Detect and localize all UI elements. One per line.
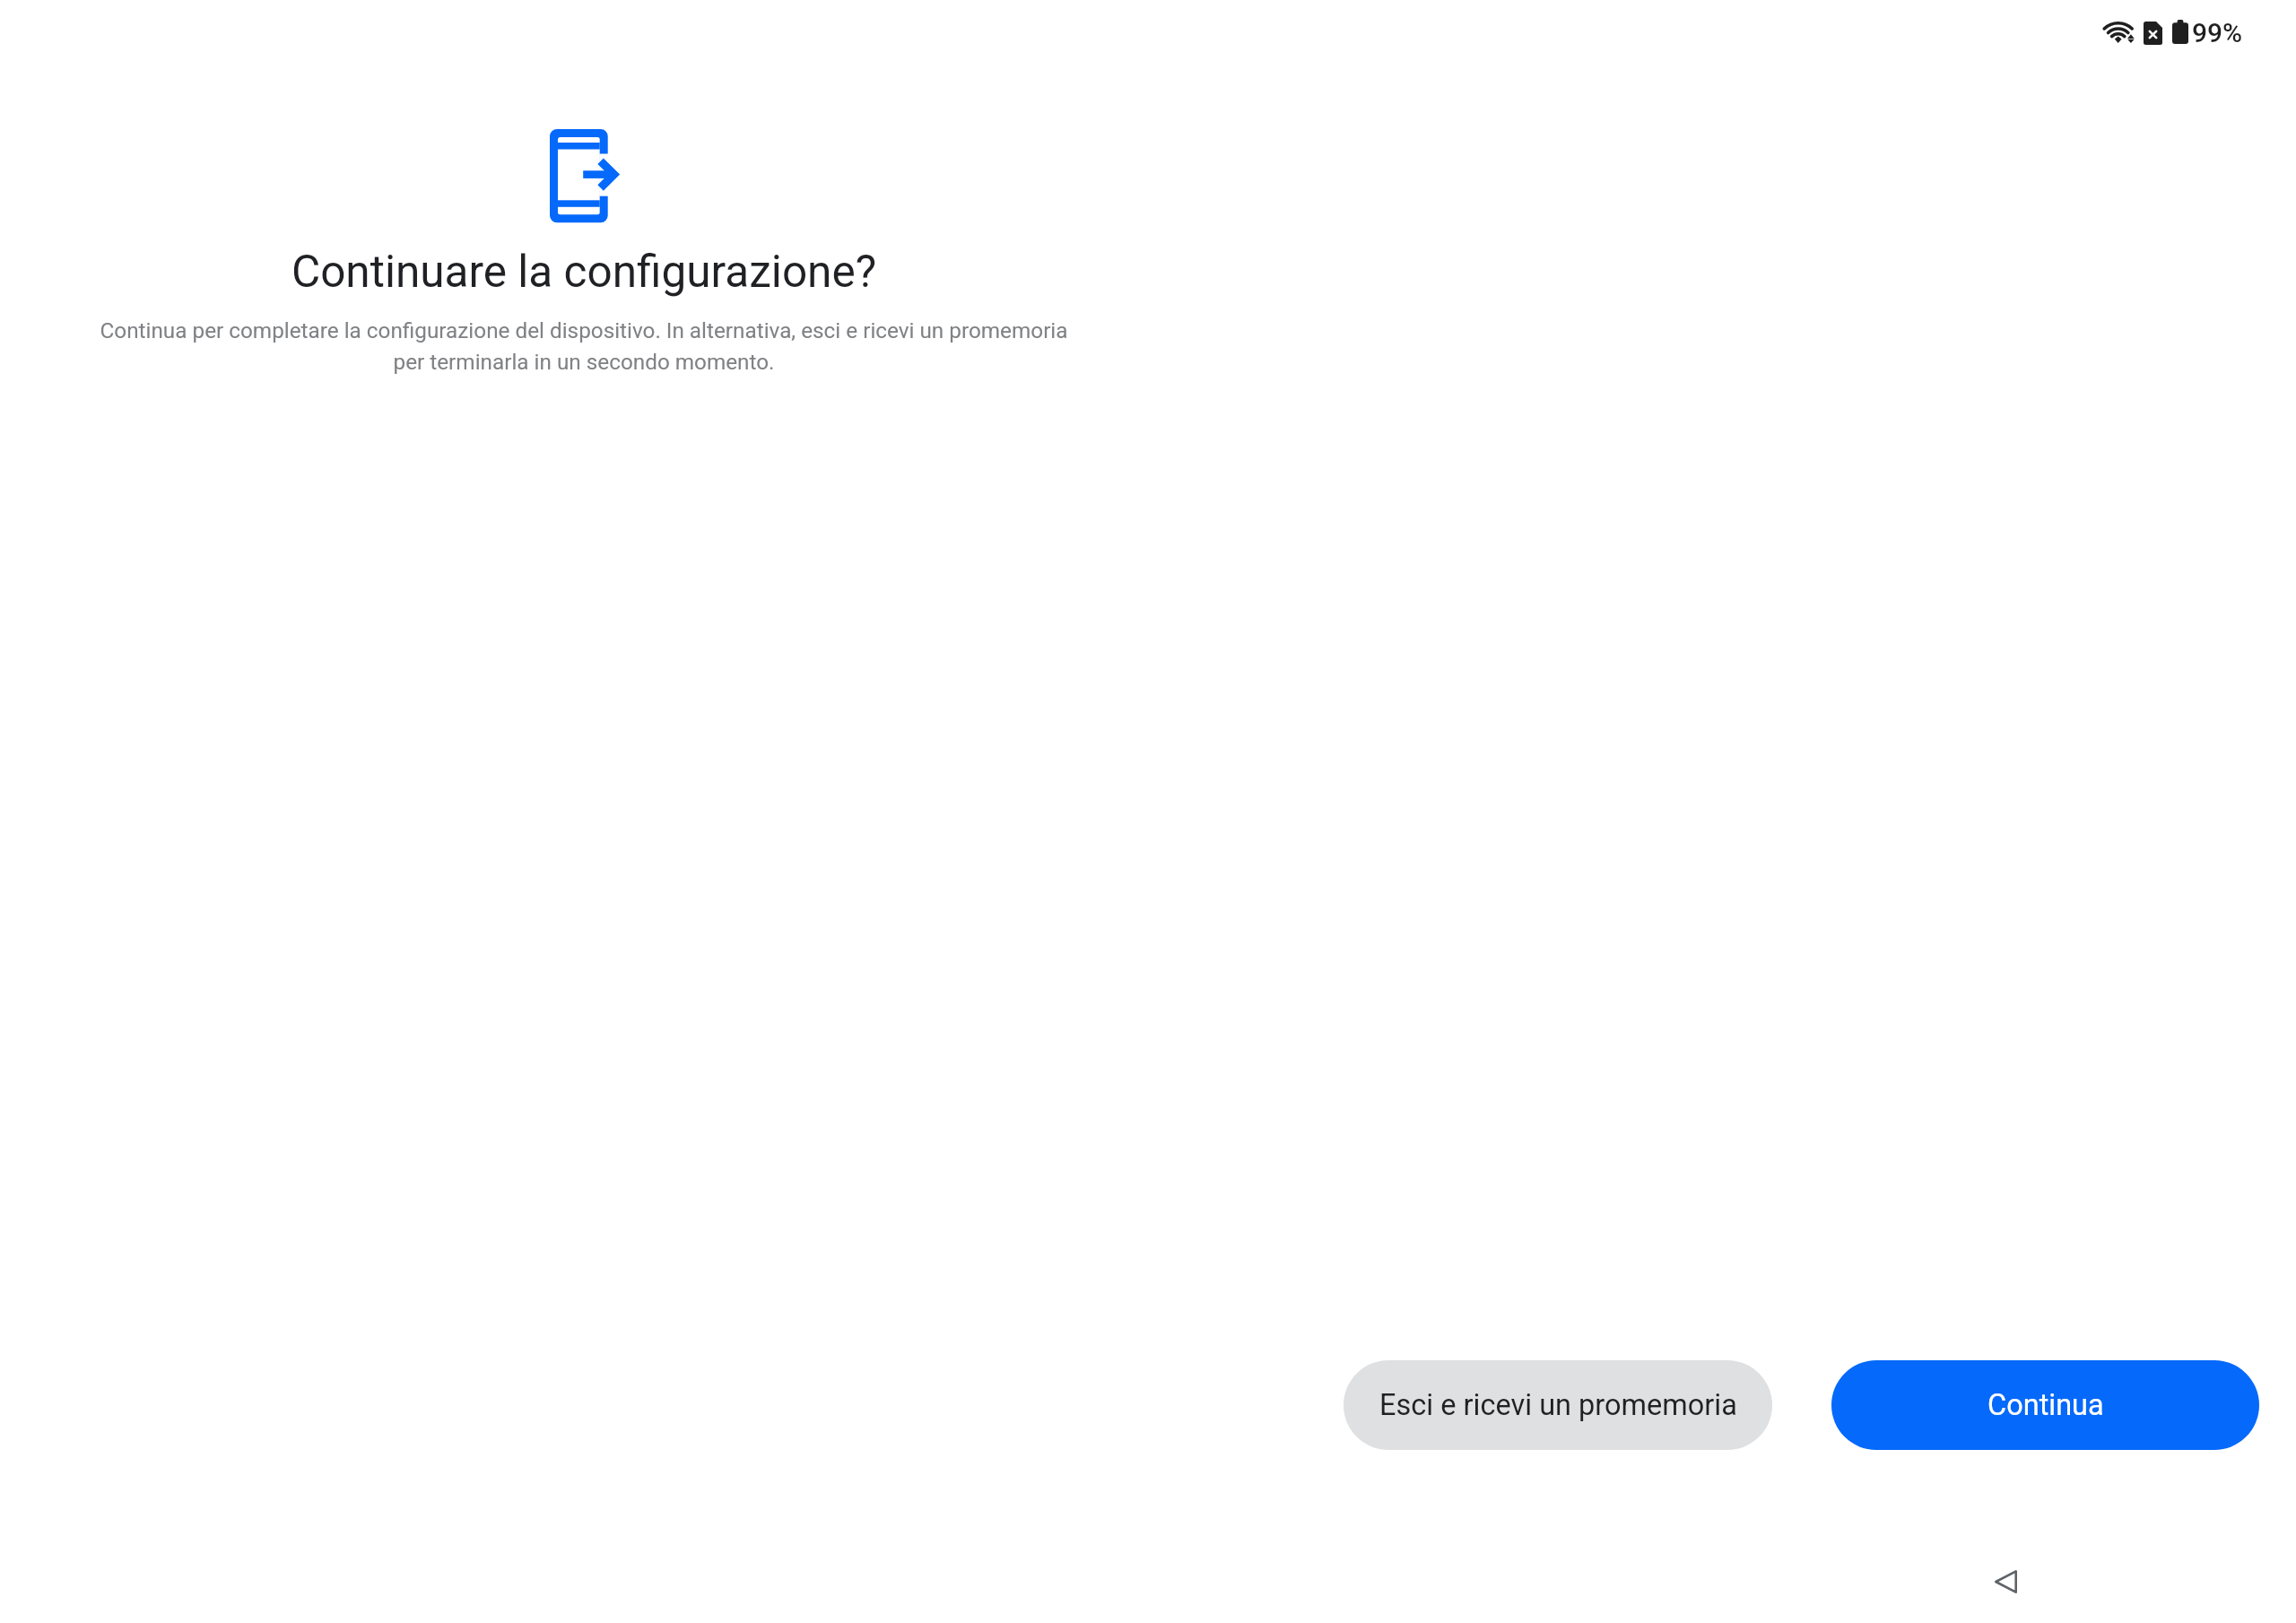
staticText: Esci e ricevi un promemoria [1379, 1388, 1737, 1422]
staticText: Continua per completare la configurazion… [81, 317, 1087, 375]
staticText: Continuare la configurazione? [81, 246, 1087, 298]
staticText: 99% [2192, 17, 2243, 48]
staticText: Continua [1987, 1388, 2104, 1422]
button[interactable]: Esci e ricevi un promemoria [1344, 1360, 1772, 1450]
button[interactable]: Continua [1831, 1360, 2259, 1450]
button[interactable]: Back [1962, 1539, 2048, 1623]
